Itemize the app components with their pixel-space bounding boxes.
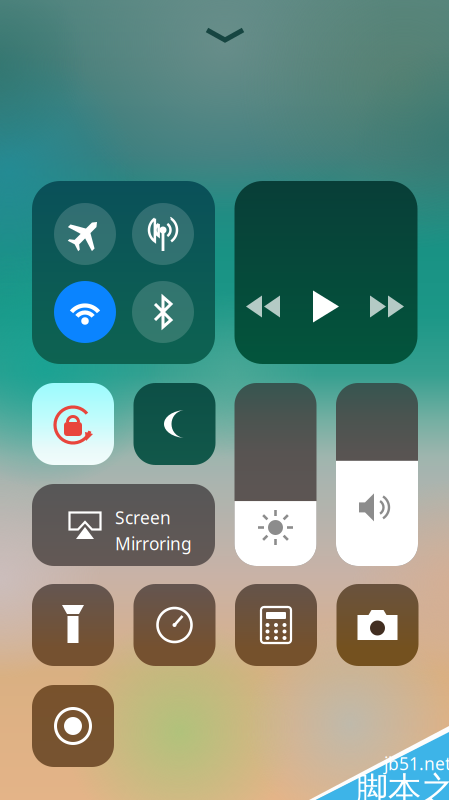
button[interactable]: Previous (237, 279, 291, 333)
button[interactable]: Screen (32, 484, 215, 566)
button[interactable]: Screen Recording (32, 685, 114, 767)
button[interactable]: Rotation Lock (32, 383, 114, 465)
button[interactable]: Next (361, 279, 415, 333)
button[interactable]: Volume (336, 383, 418, 566)
button[interactable]: Calculator (235, 584, 317, 666)
staticText: Mirroring (115, 532, 192, 555)
staticText: Screen (115, 506, 171, 529)
button[interactable]: Play (299, 279, 353, 333)
button[interactable] (54, 281, 116, 343)
button[interactable] (54, 203, 116, 265)
staticText: 脚本之家 (355, 769, 449, 800)
button[interactable]: Brightness (234, 383, 316, 566)
button[interactable] (132, 203, 194, 265)
button[interactable] (132, 281, 194, 343)
staticText: jb51.net (384, 752, 449, 775)
button[interactable]: Flashlight (32, 584, 114, 666)
button[interactable]: Camera (336, 584, 418, 666)
button[interactable]: Do Not Disturb (133, 383, 215, 465)
button[interactable]: Timer (133, 584, 215, 666)
